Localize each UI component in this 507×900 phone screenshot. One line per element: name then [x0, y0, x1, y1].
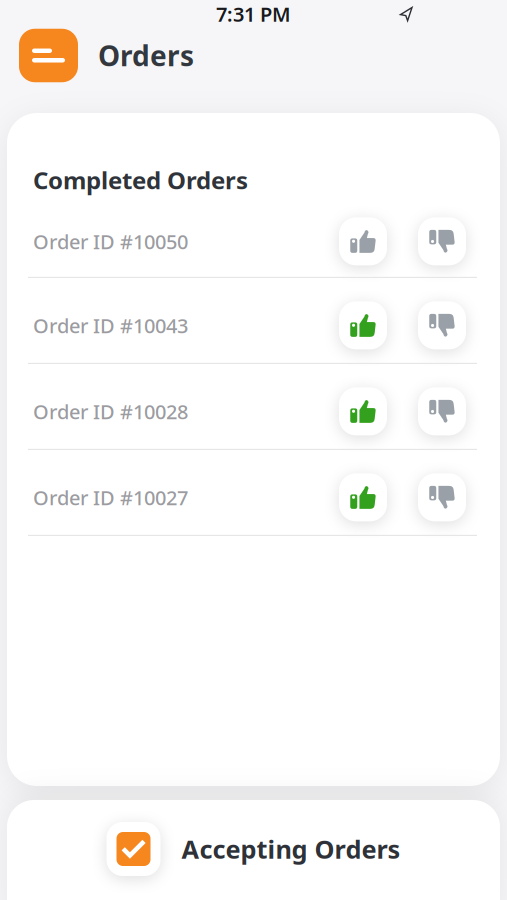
button[interactable]: Thumbs up: [339, 473, 387, 521]
staticText: Order ID #10043: [33, 312, 188, 339]
staticText: Order ID #10050: [33, 228, 188, 255]
button[interactable]: Thumbs down: [418, 387, 466, 435]
button[interactable]: Thumbs down: [418, 217, 466, 265]
staticText: Order ID #10027: [33, 484, 188, 511]
button[interactable]: Thumbs down: [418, 301, 466, 349]
staticText: Completed Orders: [33, 164, 248, 196]
button[interactable]: Thumbs up: [339, 387, 387, 435]
button[interactable]: Menu: [19, 29, 78, 82]
button[interactable]: Thumbs up: [339, 217, 387, 265]
button[interactable]: Thumbs down: [418, 473, 466, 521]
button[interactable]: Thumbs up: [339, 301, 387, 349]
staticText: Orders: [98, 37, 194, 74]
staticText: 7:31 PM: [216, 1, 291, 27]
staticText: Accepting Orders: [181, 832, 400, 866]
staticText: Order ID #10028: [33, 398, 188, 425]
button[interactable]: Accepting Orders: [106, 822, 400, 876]
